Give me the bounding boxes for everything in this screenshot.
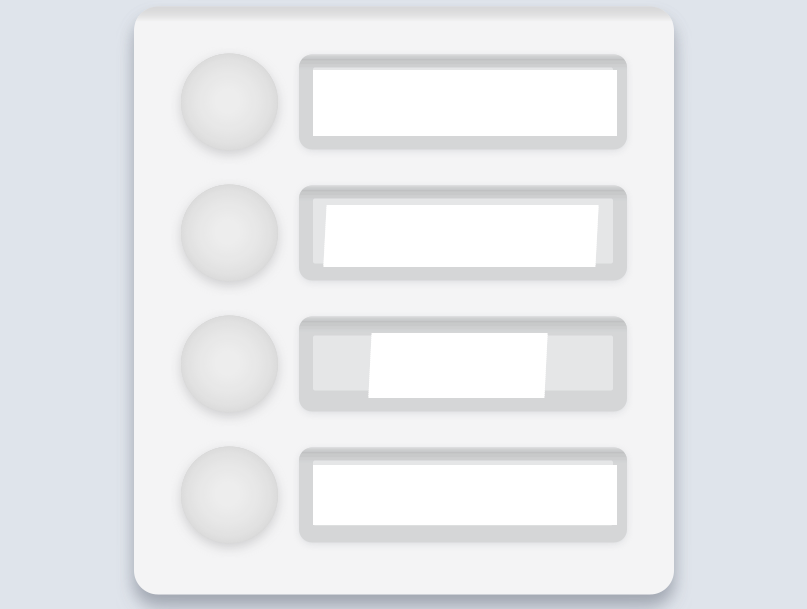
- button[interactable]: Loading item 1: [181, 53, 627, 150]
- button[interactable]: Loading item 4: [181, 446, 627, 543]
- button[interactable]: Loading item 3: [181, 315, 627, 412]
- button[interactable]: Loading item 2: [181, 184, 627, 281]
